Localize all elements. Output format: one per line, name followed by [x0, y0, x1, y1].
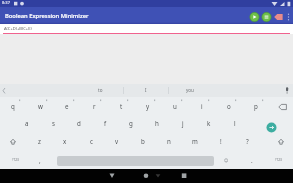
- staticText: o: [227, 102, 231, 110]
- staticText: 8:37: [2, 0, 10, 5]
- staticText: p: [254, 102, 258, 110]
- button[interactable]: ?: [235, 132, 259, 150]
- button[interactable]: [176, 170, 192, 182]
- staticText: to: [98, 87, 103, 93]
- staticText: g: [129, 119, 133, 127]
- button[interactable]: b: [131, 132, 155, 150]
- button[interactable]: [276, 99, 293, 115]
- staticText: d: [77, 119, 81, 127]
- staticText: r: [93, 102, 96, 110]
- staticText: u: [173, 102, 177, 110]
- staticText: h: [155, 119, 159, 127]
- button[interactable]: n: [157, 132, 181, 150]
- button[interactable]: f: [93, 114, 117, 132]
- staticText: t: [120, 102, 123, 110]
- button[interactable]: u: [163, 97, 187, 115]
- button[interactable]: k: [197, 114, 221, 132]
- button[interactable]: z: [27, 132, 51, 150]
- staticText: f: [104, 119, 107, 127]
- button[interactable]: ☺: [214, 151, 238, 169]
- button[interactable]: [272, 11, 284, 23]
- staticText: s: [52, 119, 55, 127]
- button[interactable]: ,: [28, 151, 52, 169]
- button[interactable]: A(C+D)+B(C+E): [0, 24, 293, 34]
- button[interactable]: [261, 11, 272, 23]
- staticText: e: [65, 102, 69, 110]
- button[interactable]: o: [217, 97, 241, 115]
- button[interactable]: [273, 132, 289, 148]
- staticText: ,: [39, 156, 41, 164]
- button[interactable]: j: [171, 114, 195, 132]
- button[interactable]: g: [119, 114, 143, 132]
- button[interactable]: w: [28, 97, 52, 115]
- staticText: c: [90, 137, 93, 145]
- button[interactable]: [5, 132, 21, 148]
- staticText: v: [115, 137, 119, 145]
- button[interactable]: y: [136, 97, 160, 115]
- button[interactable]: s: [41, 114, 65, 132]
- staticText: j: [182, 119, 184, 127]
- button[interactable]: i: [190, 97, 214, 115]
- staticText: .: [251, 156, 253, 164]
- button[interactable]: h: [145, 114, 169, 132]
- staticText: x: [63, 137, 67, 145]
- staticText: y: [146, 102, 150, 110]
- staticText: w: [38, 102, 43, 110]
- staticText: k: [207, 119, 211, 127]
- button[interactable]: [263, 119, 280, 136]
- button[interactable]: v: [105, 132, 129, 150]
- button[interactable]: p: [244, 97, 268, 115]
- button[interactable]: [138, 170, 154, 182]
- staticText: q: [11, 102, 15, 110]
- button[interactable]: [104, 170, 120, 182]
- staticText: ☺: [224, 158, 229, 163]
- staticText: A(C+D)+B(C+E): [4, 26, 32, 32]
- staticText: Boolean Expression Minimizer: [5, 12, 89, 20]
- button[interactable]: ?123: [266, 151, 290, 169]
- button[interactable]: t: [109, 97, 133, 115]
- button[interactable]: I: [126, 84, 166, 96]
- button[interactable]: to: [80, 84, 120, 96]
- staticText: !: [220, 137, 222, 145]
- button[interactable]: ?123: [3, 151, 27, 169]
- button[interactable]: !: [209, 132, 233, 150]
- staticText: i: [201, 102, 203, 110]
- button[interactable]: l: [223, 114, 247, 132]
- staticText: you: [186, 87, 194, 93]
- button[interactable]: r: [82, 97, 106, 115]
- button[interactable]: q: [1, 97, 25, 115]
- staticText: z: [38, 137, 41, 145]
- staticText: l: [234, 119, 236, 127]
- staticText: m: [192, 137, 198, 145]
- button[interactable]: x: [53, 132, 77, 150]
- staticText: a: [25, 119, 29, 127]
- staticText: ?: [246, 137, 249, 145]
- button[interactable]: [249, 11, 260, 23]
- button[interactable]: a: [15, 114, 39, 132]
- button[interactable]: you: [170, 84, 210, 96]
- button[interactable]: e: [55, 97, 79, 115]
- button[interactable]: d: [67, 114, 91, 132]
- staticText: ?123: [275, 158, 282, 162]
- staticText: b: [141, 137, 145, 145]
- button[interactable]: .: [240, 151, 264, 169]
- button[interactable]: [284, 11, 293, 23]
- button[interactable]: c: [79, 132, 103, 150]
- staticText: ?123: [12, 158, 19, 162]
- button[interactable]: m: [183, 132, 207, 150]
- staticText: n: [167, 137, 171, 145]
- staticText: I: [145, 87, 147, 93]
